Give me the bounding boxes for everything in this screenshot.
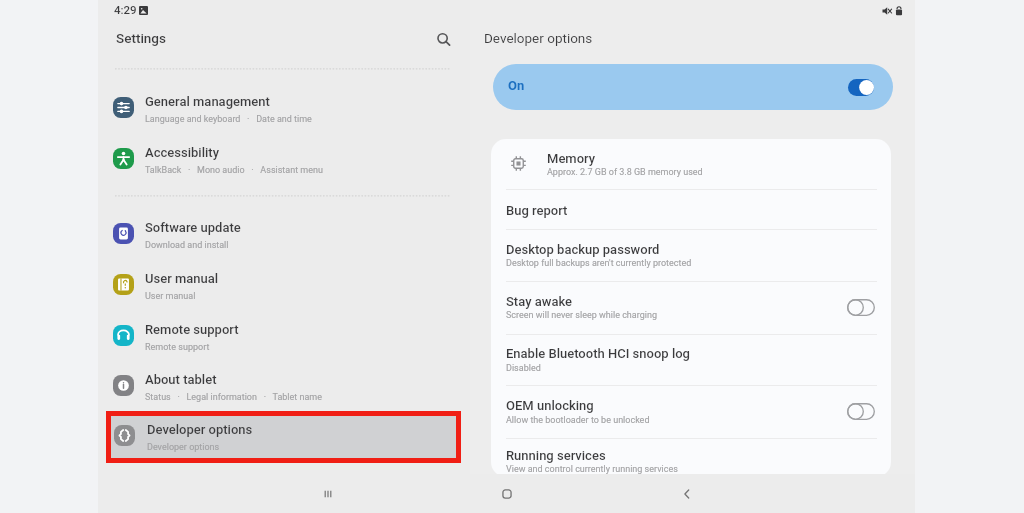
staticText: Bug report (506, 203, 568, 218)
staticText: Developer options (147, 422, 253, 437)
staticText: Settings (116, 30, 166, 46)
staticText: Enable Bluetooth HCI snoop log (506, 346, 690, 361)
staticText: TalkBack · Mono audio · Assistant menu (145, 165, 323, 176)
button[interactable]: Search (432, 28, 456, 52)
button[interactable]: Developer options (111, 416, 456, 458)
button[interactable]: On (493, 64, 893, 110)
button[interactable]: OEM unlocking (491, 385, 891, 438)
button[interactable]: Running services (491, 438, 891, 477)
button[interactable]: Home (487, 475, 527, 513)
staticText: About tablet (145, 372, 217, 387)
staticText: View and control currently running servi… (506, 464, 678, 475)
button[interactable]: Stay awake (491, 281, 891, 334)
button[interactable]: Memory (491, 139, 891, 189)
staticText: Stay awake (506, 294, 573, 309)
staticText: Allow the bootloader to be unlocked (506, 415, 650, 426)
staticText: Approx. 2.7 GB of 3.8 GB memory used (547, 167, 703, 178)
staticText: Memory (547, 151, 596, 166)
staticText: Remote support (145, 322, 239, 337)
staticText: 4:29 (114, 3, 137, 16)
staticText: OEM unlocking (506, 398, 594, 413)
staticText: Disabled (506, 363, 541, 374)
staticText: Download and install (145, 240, 229, 251)
button[interactable]: Recents (308, 475, 348, 513)
button[interactable]: Remote support (112, 322, 460, 360)
button[interactable]: Enable Bluetooth HCI snoop log (491, 334, 891, 385)
staticText: Desktop full backups aren't currently pr… (506, 258, 692, 269)
staticText: Accessibility (145, 145, 219, 160)
staticText: General management (145, 94, 270, 109)
button[interactable]: About tablet (112, 372, 460, 410)
button[interactable]: Desktop backup password (491, 229, 891, 281)
staticText: Software update (145, 220, 241, 235)
button[interactable]: General management (112, 94, 460, 132)
staticText: Remote support (145, 342, 210, 353)
button[interactable]: Software update (112, 220, 460, 258)
staticText: Running services (506, 448, 606, 463)
staticText: Language and keyboard · Date and time (145, 114, 312, 125)
staticText: Developer options (147, 442, 220, 453)
staticText: Status · Legal information · Tablet name (145, 392, 323, 403)
button[interactable]: Bug report (491, 189, 891, 230)
button[interactable]: User manual (112, 271, 460, 309)
staticText: User manual (145, 291, 196, 302)
staticText: User manual (145, 271, 219, 286)
button[interactable]: Accessibility (112, 145, 460, 183)
button[interactable]: Back (667, 475, 707, 513)
staticText: On (508, 78, 525, 93)
staticText: Developer options (484, 30, 593, 46)
staticText: Desktop backup password (506, 242, 660, 257)
staticText: Screen will never sleep while charging (506, 310, 657, 321)
